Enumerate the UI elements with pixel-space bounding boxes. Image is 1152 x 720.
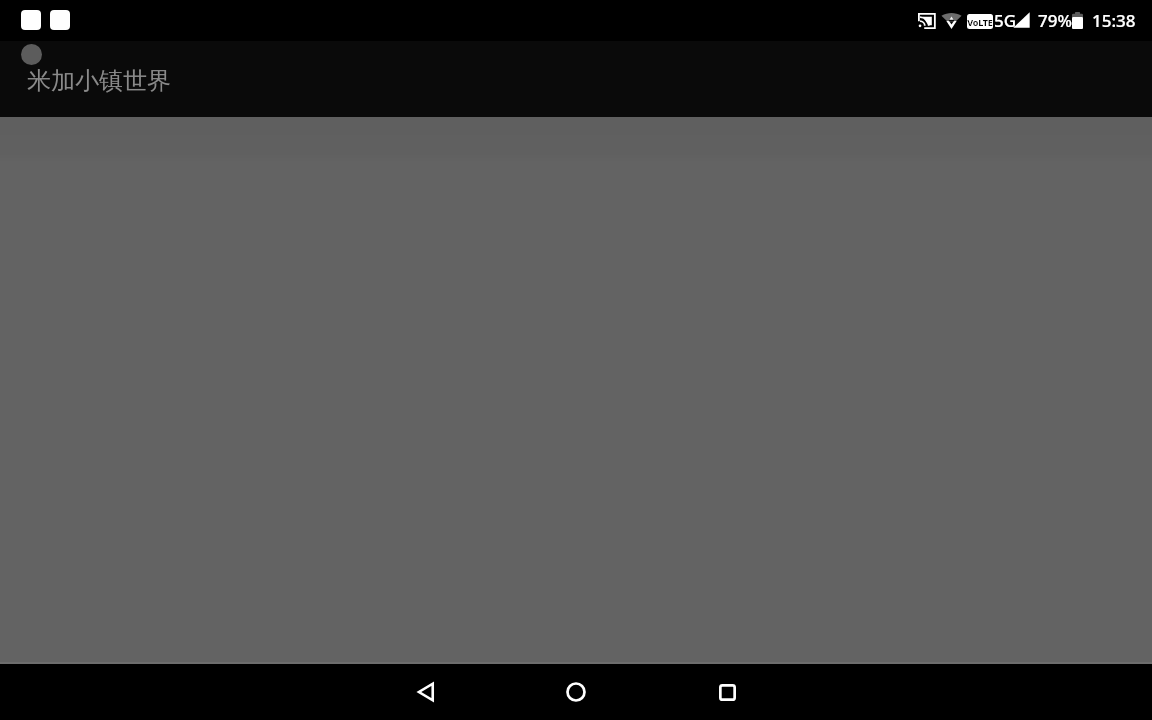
other: Wi-Fi signal (941, 11, 962, 29)
staticText: 米加小镇世界 (27, 66, 171, 96)
staticText: 79% (1038, 9, 1072, 32)
other: VoLTE enabled (967, 14, 993, 29)
staticText: 5G (994, 9, 1017, 32)
other: Screen casting (917, 13, 936, 29)
button[interactable]: Recent apps (697, 664, 757, 720)
button[interactable]: Notification (50, 10, 70, 30)
other: Mobile signal strength (1013, 12, 1030, 28)
button[interactable]: App icon (0, 41, 1152, 117)
button[interactable]: Home (546, 664, 606, 720)
staticText: 15:38 (1092, 9, 1136, 32)
staticText: VoLTE (967, 16, 993, 28)
button[interactable]: Notification (21, 10, 41, 30)
button[interactable]: Back (396, 664, 456, 720)
other: Battery 79 percent (1072, 12, 1083, 29)
button[interactable]: App icon (21, 44, 42, 65)
